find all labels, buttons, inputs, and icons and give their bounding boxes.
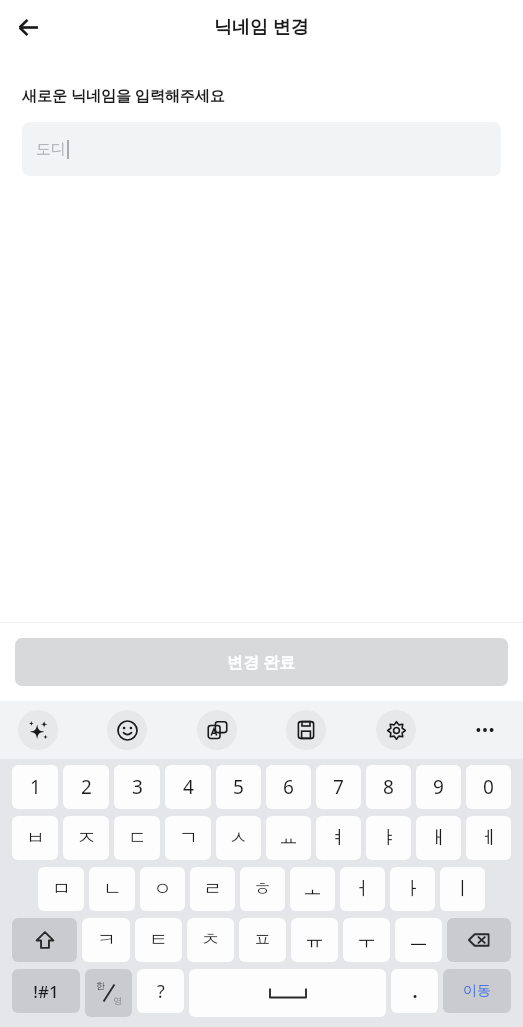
staticText: 7 [333,774,344,800]
button[interactable]: Space [189,969,386,1017]
staticText: ㅋ [97,928,116,952]
staticText: 이동 [463,982,491,1000]
button[interactable]: ㅌ [135,918,182,962]
staticText: 0 [483,774,494,800]
button[interactable]: 0 [466,765,511,809]
staticText: ㅛ [279,826,298,850]
staticText: ㅎ [253,877,272,901]
staticText: ㅠ [305,928,324,952]
staticText: ㅑ [379,826,398,850]
button[interactable]: ㅍ [239,918,286,962]
button[interactable]: ㅁ [38,867,84,911]
staticText: 영 [113,995,122,1006]
button[interactable]: ? [137,969,184,1013]
staticText: ㅊ [201,928,220,952]
staticText: ㄱ [179,826,198,850]
staticText: ㅈ [77,826,96,850]
staticText: 닉네임 변경 [214,14,309,39]
button[interactable]: ㅣ [440,867,485,911]
button[interactable]: 9 [416,765,461,809]
button[interactable]: ㅡ [395,918,442,962]
button[interactable]: ㅐ [416,816,461,860]
button[interactable]: 3 [114,765,160,809]
staticText: 새로운 닉네임을 입력해주세요 [22,85,225,105]
button[interactable]: ㅊ [187,918,234,962]
staticText: 도디 [36,140,66,159]
button[interactable]: 2 [63,765,109,809]
button[interactable]: Shift [12,918,77,962]
button[interactable]: 변경 완료 [15,638,508,686]
button[interactable]: ㅏ [390,867,435,911]
button[interactable]: ㄴ [89,867,135,911]
button[interactable]: ㅂ [12,816,58,860]
button[interactable]: 7 [316,765,361,809]
staticText: ㅜ [357,928,376,952]
staticText: ㅁ [52,877,71,901]
staticText: ㅂ [26,826,45,850]
button[interactable]: 8 [366,765,411,809]
staticText: ㄴ [103,877,122,901]
staticText: ㅏ [403,877,422,901]
button[interactable]: ㅇ [140,867,185,911]
button[interactable]: 5 [216,765,261,809]
staticText: ? [157,979,165,1004]
staticText: ㅌ [149,928,168,952]
button[interactable]: Backspace [447,918,511,962]
staticText: 3 [132,774,143,800]
staticText: 4 [183,774,194,800]
button[interactable]: !#1 [12,969,80,1013]
button[interactable]: ㅠ [291,918,338,962]
button[interactable]: Korean English toggle [85,969,132,1017]
staticText: 2 [81,774,92,800]
staticText: 1 [30,774,41,800]
staticText: ㅡ [409,928,428,952]
staticText: !#1 [33,980,59,1003]
staticText: ㅗ [303,877,322,901]
button[interactable]: ㅕ [316,816,361,860]
staticText: ㅓ [353,877,372,901]
staticText: ㅣ [453,877,472,901]
button[interactable]: ㅈ [63,816,109,860]
staticText: 5 [233,774,244,800]
staticText: . [412,979,418,1004]
staticText: 변경 완료 [227,651,296,673]
button[interactable]: ㅅ [216,816,261,860]
button[interactable]: Settings [376,710,416,750]
button[interactable]: AI suggestions [18,710,58,750]
button[interactable]: Back [8,7,48,47]
staticText: ㄷ [128,826,147,850]
staticText: 9 [433,774,444,800]
button[interactable]: 4 [165,765,211,809]
button[interactable]: Emoji [107,710,147,750]
button[interactable]: ㄷ [114,816,160,860]
button[interactable]: ㅛ [266,816,311,860]
staticText: ㅕ [329,826,348,850]
button[interactable]: ㄱ [165,816,211,860]
button[interactable]: ㅋ [82,918,130,962]
button[interactable]: 이동 [443,969,511,1013]
button[interactable]: 6 [266,765,311,809]
button[interactable]: More [465,710,505,750]
staticText: ㅐ [429,826,448,850]
button[interactable]: ㅗ [290,867,335,911]
button[interactable]: ㅓ [340,867,385,911]
staticText: 6 [283,774,294,800]
staticText: ㅅ [229,826,248,850]
button[interactable]: 도디 [22,122,501,176]
button[interactable]: ㄹ [190,867,235,911]
staticText: ㄹ [203,877,222,901]
staticText: ㅍ [253,928,272,952]
button[interactable]: Clipboard [286,710,326,750]
staticText: ㅇ [153,877,172,901]
staticText: 8 [383,774,394,800]
staticText: ㅔ [479,826,498,850]
button[interactable]: ㅑ [366,816,411,860]
button[interactable]: ㅜ [343,918,390,962]
button[interactable]: Translate [197,710,237,750]
button[interactable]: ㅔ [466,816,511,860]
button[interactable]: ㅎ [240,867,285,911]
button[interactable]: 1 [12,765,58,809]
button[interactable]: . [391,969,438,1013]
staticText: 한 [96,980,105,991]
